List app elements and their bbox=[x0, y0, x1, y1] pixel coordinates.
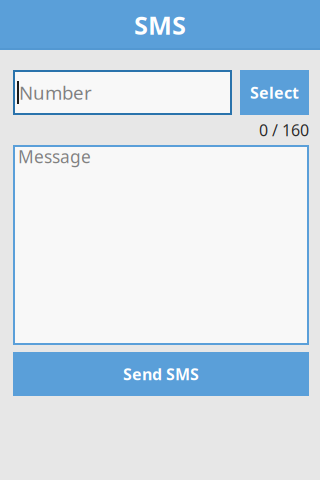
staticText: 0 / 160 bbox=[259, 119, 309, 141]
staticText: Select bbox=[250, 82, 299, 103]
button[interactable]: Select bbox=[240, 70, 309, 115]
staticText: SMS bbox=[134, 8, 186, 42]
button[interactable]: Send SMS bbox=[13, 352, 309, 396]
staticText: Message bbox=[18, 145, 91, 168]
staticText: Number bbox=[19, 80, 92, 105]
button[interactable]: Message bbox=[13, 145, 309, 345]
button[interactable]: Number bbox=[13, 70, 232, 115]
staticText: Send SMS bbox=[123, 363, 199, 385]
